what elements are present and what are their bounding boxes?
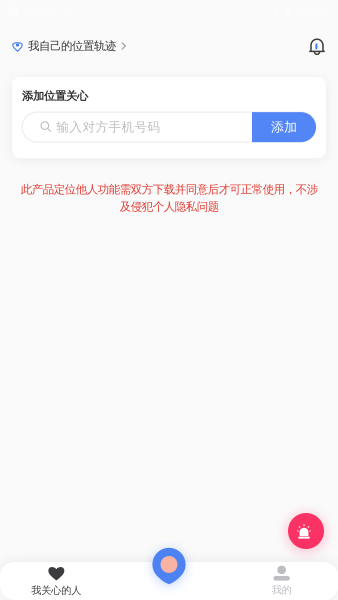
button[interactable]: Map <box>113 560 225 600</box>
button[interactable]: 我关心的人 <box>0 560 113 600</box>
button[interactable]: 我的 <box>225 561 338 600</box>
staticText: 输入对方手机号码 <box>57 119 161 135</box>
staticText: 我的 <box>272 584 292 596</box>
staticText: 添加位置关心 <box>22 89 88 103</box>
button[interactable]: Notifications <box>296 32 338 60</box>
staticText: 我自己的位置轨迹 <box>28 39 116 53</box>
button[interactable]: Emergency alarm <box>284 509 328 553</box>
button[interactable]: 我自己的位置轨迹 <box>0 33 136 59</box>
button[interactable]: 添加 <box>252 112 316 142</box>
staticText: 我关心的人 <box>31 584 81 597</box>
staticText <box>167 584 170 597</box>
staticText: 添加 <box>271 119 297 135</box>
staticText: 此产品定位他人功能需双方下载并同意后才可正常使用，不涉及侵犯个人隐私问题 <box>20 182 317 214</box>
